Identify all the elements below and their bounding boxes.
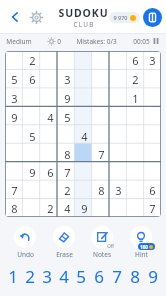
button[interactable] — [144, 127, 161, 145]
button[interactable]: 7 — [93, 145, 110, 163]
button[interactable]: 5 — [59, 108, 76, 127]
button[interactable]: 9 — [144, 264, 162, 288]
button[interactable]: 9 — [5, 108, 23, 127]
button[interactable] — [144, 145, 161, 163]
button[interactable] — [110, 145, 127, 163]
button[interactable]: Profile — [143, 8, 162, 27]
button[interactable] — [144, 163, 161, 181]
button[interactable] — [5, 51, 23, 70]
button[interactable] — [127, 145, 144, 163]
button[interactable]: 7 — [59, 163, 76, 181]
button[interactable] — [110, 127, 127, 145]
button[interactable]: 7 — [5, 181, 23, 199]
button[interactable]: 1 — [127, 89, 144, 108]
button[interactable]: 4 — [59, 199, 76, 217]
button[interactable] — [93, 51, 110, 70]
button[interactable]: 2 — [127, 70, 144, 89]
button[interactable]: Back — [4, 6, 26, 28]
button[interactable] — [144, 70, 161, 89]
button[interactable] — [144, 89, 161, 108]
button[interactable]: 3 — [144, 51, 161, 70]
button[interactable] — [127, 181, 144, 199]
button[interactable]: 8 — [5, 199, 23, 217]
button[interactable]: 2 — [23, 51, 41, 70]
button[interactable] — [5, 145, 23, 163]
button[interactable] — [110, 89, 127, 108]
button[interactable] — [59, 127, 76, 145]
button[interactable]: 6 — [90, 264, 108, 288]
button[interactable] — [76, 108, 93, 127]
button[interactable] — [41, 51, 59, 70]
button[interactable]: 5 — [72, 264, 90, 288]
button[interactable] — [41, 89, 59, 108]
button[interactable]: Undo — [8, 226, 42, 259]
button[interactable]: 2 — [41, 199, 59, 217]
button[interactable] — [93, 89, 110, 108]
button[interactable] — [110, 51, 127, 70]
button[interactable]: 4 — [55, 264, 72, 288]
button[interactable] — [110, 199, 127, 217]
button[interactable]: 7 — [144, 199, 161, 217]
button[interactable] — [127, 199, 144, 217]
button[interactable]: 4 — [76, 127, 93, 145]
button[interactable]: 8 — [93, 181, 110, 199]
button[interactable] — [41, 145, 59, 163]
button[interactable] — [93, 108, 110, 127]
button[interactable]: Settings — [25, 6, 47, 28]
button[interactable]: 5 — [5, 70, 23, 89]
button[interactable]: 3 — [59, 70, 76, 89]
button[interactable] — [5, 127, 23, 145]
button[interactable]: 9 970 — [113, 12, 136, 23]
button[interactable] — [127, 108, 144, 127]
button[interactable]: Off — [85, 226, 119, 259]
button[interactable] — [5, 163, 23, 181]
button[interactable] — [59, 51, 76, 70]
button[interactable] — [23, 199, 41, 217]
button[interactable]: 3 — [5, 89, 23, 108]
button[interactable] — [41, 181, 59, 199]
button[interactable] — [110, 108, 127, 127]
button[interactable] — [23, 89, 41, 108]
button[interactable]: 9 — [76, 199, 93, 217]
button[interactable]: 7 — [108, 264, 126, 288]
button[interactable]: 6 — [127, 51, 144, 70]
button[interactable]: 9 — [59, 89, 76, 108]
button[interactable]: 4 — [41, 108, 59, 127]
button[interactable] — [93, 70, 110, 89]
button[interactable]: 2 — [59, 181, 76, 199]
button[interactable] — [144, 108, 161, 127]
button[interactable]: Erase — [47, 226, 81, 259]
button[interactable] — [127, 163, 144, 181]
button[interactable]: 8 — [126, 264, 144, 288]
button[interactable] — [127, 127, 144, 145]
button[interactable] — [76, 145, 93, 163]
button[interactable] — [110, 70, 127, 89]
button[interactable] — [23, 108, 41, 127]
button[interactable]: 9 — [23, 163, 41, 181]
button[interactable] — [93, 199, 110, 217]
button[interactable]: 6 — [23, 70, 41, 89]
staticText: 5 — [64, 110, 71, 125]
button[interactable] — [93, 163, 110, 181]
button[interactable]: 100 — [124, 226, 158, 259]
button[interactable] — [93, 127, 110, 145]
button[interactable] — [41, 70, 59, 89]
button[interactable]: 6 — [41, 163, 59, 181]
button[interactable] — [76, 163, 93, 181]
button[interactable] — [23, 181, 41, 199]
button[interactable] — [76, 51, 93, 70]
button[interactable]: Pause — [152, 37, 160, 45]
button[interactable]: 2 — [21, 264, 38, 288]
button[interactable] — [23, 145, 41, 163]
button[interactable] — [76, 89, 93, 108]
button[interactable]: 5 — [23, 127, 41, 145]
button[interactable]: 1 — [4, 264, 21, 288]
button[interactable] — [76, 70, 93, 89]
button[interactable] — [76, 181, 93, 199]
button[interactable] — [110, 163, 127, 181]
button[interactable] — [41, 127, 59, 145]
button[interactable]: 3 — [38, 264, 55, 288]
button[interactable]: 8 — [59, 145, 76, 163]
button[interactable]: 3 — [110, 181, 127, 199]
button[interactable]: 6 — [144, 181, 161, 199]
